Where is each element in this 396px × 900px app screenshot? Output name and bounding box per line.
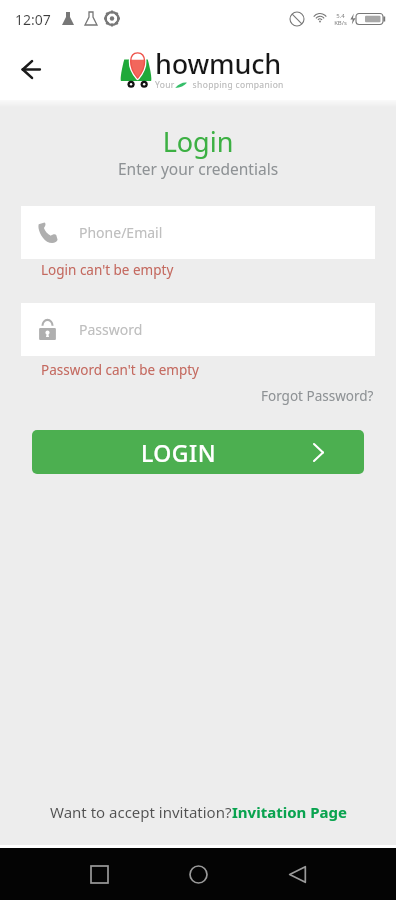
button[interactable]: Forgot Password? — [261, 387, 396, 405]
button[interactable]: Password — [21, 303, 375, 356]
staticText: Login — [0, 123, 396, 160]
button[interactable]: Home — [174, 850, 222, 898]
button[interactable]: Invitation Page — [232, 802, 347, 822]
staticText: Login can't be empty — [41, 261, 174, 279]
button[interactable]: Back — [273, 850, 321, 898]
staticText: Want to accept invitation? — [50, 802, 232, 822]
staticText: Phone/Email — [79, 223, 163, 242]
staticText: howmuch — [155, 45, 281, 82]
staticText: Enter your credentials — [0, 158, 396, 179]
staticText: Password can't be empty — [41, 361, 199, 379]
staticText: Password — [79, 320, 143, 339]
staticText: Your shopping companion — [155, 79, 284, 91]
button[interactable]: Phone/Email — [21, 206, 375, 259]
button[interactable]: Back — [7, 45, 55, 93]
staticText: 12:07 — [15, 10, 51, 29]
staticText: 5.4 KB/s — [334, 12, 347, 27]
button[interactable]: Recents — [75, 850, 123, 898]
staticText: LOGIN — [141, 437, 217, 468]
button[interactable]: LOGIN — [32, 430, 364, 474]
